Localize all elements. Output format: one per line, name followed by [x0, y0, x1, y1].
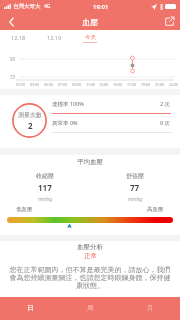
- staticText: 11:00: [86, 82, 95, 87]
- button[interactable]: 月: [120, 297, 180, 320]
- staticText: 13:00: [99, 82, 108, 87]
- staticText: 19:01: [93, 3, 109, 11]
- staticText: 2: [28, 120, 33, 131]
- button[interactable]: 今天: [72, 30, 108, 46]
- staticText: 19:00: [141, 82, 150, 87]
- staticText: 07:00: [58, 82, 67, 87]
- staticText: 周: [87, 304, 94, 312]
- button[interactable]: 12.19: [36, 30, 72, 46]
- staticText: 收縮壓: [36, 172, 54, 180]
- staticText: 73: [10, 74, 16, 80]
- staticText: 93: [10, 56, 16, 62]
- staticText: mmhg: [128, 196, 142, 202]
- staticText: 0 次: [160, 119, 171, 127]
- staticText: 05:00: [44, 82, 53, 87]
- staticText: 低血壓: [16, 206, 33, 213]
- button[interactable]: Share: [158, 13, 180, 30]
- staticText: 01:00: [16, 82, 25, 87]
- staticText: 17:00: [127, 82, 136, 87]
- staticText: 台灣大哥大: [13, 3, 41, 10]
- staticText: 您在正常範圍內，但不算是最完美的，請放心，我們會為您持續測量關注，也請您定時鍛鍊…: [7, 265, 173, 290]
- staticText: 09:00: [72, 82, 81, 87]
- staticText: mmhg: [38, 196, 52, 202]
- staticText: 正常: [84, 252, 97, 260]
- staticText: 2 次: [160, 100, 171, 108]
- staticText: 舒張壓: [126, 172, 144, 180]
- staticText: 117: [38, 182, 52, 193]
- staticText: 今天: [85, 34, 96, 41]
- staticText: 達標率 100%: [52, 100, 84, 108]
- staticText: 4G: [44, 3, 51, 10]
- staticText: 23:00: [169, 82, 178, 87]
- staticText: 異常率 0%: [52, 119, 78, 127]
- staticText: 03:00: [30, 82, 39, 87]
- staticText: 血壓分析: [77, 243, 103, 251]
- staticText: 15:00: [113, 82, 122, 87]
- staticText: 77: [130, 182, 140, 193]
- staticText: 21:00: [155, 82, 164, 87]
- staticText: 高血壓: [147, 206, 164, 213]
- staticText: 12.18: [11, 34, 26, 41]
- staticText: 測量次數: [18, 111, 42, 119]
- button[interactable]: 12.18: [0, 30, 36, 46]
- staticText: 月: [147, 304, 154, 312]
- staticText: 血壓: [82, 17, 98, 27]
- button[interactable]: 日: [0, 297, 60, 320]
- staticText: 12.19: [47, 34, 62, 41]
- button[interactable]: 周: [60, 297, 120, 320]
- button[interactable]: Back: [0, 13, 22, 30]
- staticText: 日: [27, 304, 34, 312]
- staticText: 平均血壓: [77, 158, 103, 166]
